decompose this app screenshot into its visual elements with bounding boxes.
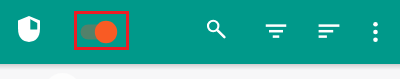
button[interactable]: More options <box>354 11 396 53</box>
button[interactable]: Protection status <box>8 11 50 47</box>
button[interactable]: Sort <box>307 9 351 53</box>
button[interactable]: Search <box>194 7 238 51</box>
button[interactable]: Toggle protection <box>74 11 129 50</box>
button[interactable]: Filter <box>254 9 298 53</box>
